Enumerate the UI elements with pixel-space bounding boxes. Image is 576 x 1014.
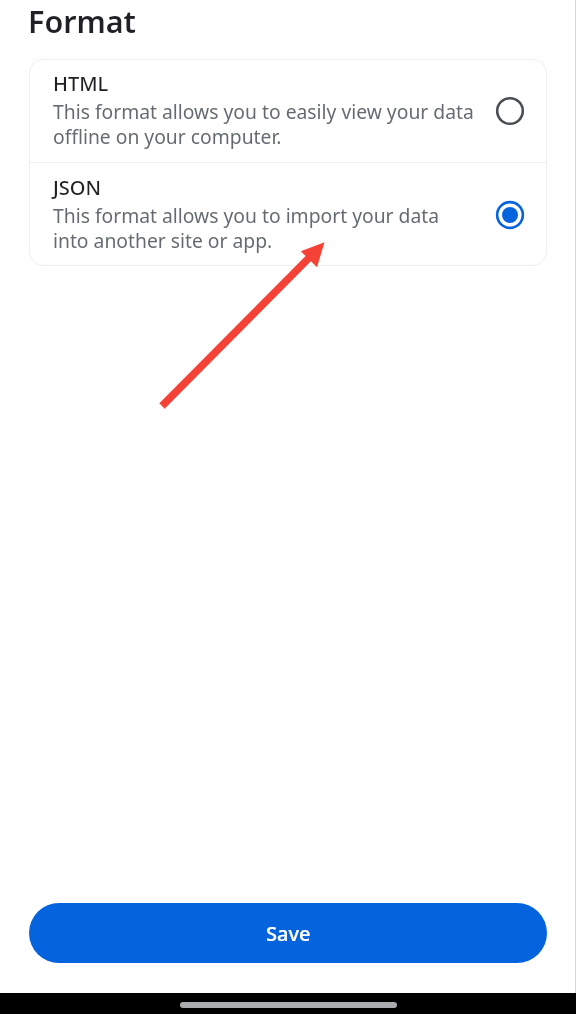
staticText: This format allows you to import your da… [53,202,440,253]
button[interactable]: JSON selected [495,200,525,230]
staticText: Save [266,920,311,947]
staticText: JSON [53,174,101,201]
staticText: This format allows you to easily view yo… [53,98,474,149]
button[interactable]: Select HTML [495,96,525,126]
staticText: HTML [53,70,109,97]
staticText: Format [28,0,136,42]
button[interactable]: Save [29,903,547,963]
button[interactable]: HTML [29,59,547,162]
other: Home gesture handle [180,1002,397,1008]
button[interactable]: JSON [29,163,547,266]
